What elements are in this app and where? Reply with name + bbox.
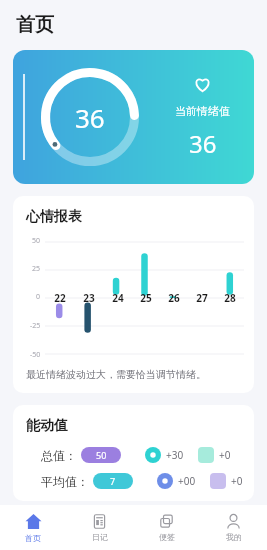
staticText: +0 bbox=[219, 448, 231, 462]
staticText: 首页 bbox=[16, 13, 54, 37]
staticText: 心情报表 bbox=[26, 208, 82, 226]
staticText: 36 bbox=[189, 127, 217, 160]
staticText: 50 bbox=[96, 449, 107, 461]
staticText: 首页 bbox=[25, 533, 41, 543]
button[interactable]: 总值： bbox=[41, 447, 254, 463]
staticText: 25 bbox=[32, 264, 41, 274]
staticText: 总值： bbox=[41, 448, 77, 463]
staticText: +00 bbox=[178, 474, 196, 488]
staticText: 当前情绪值 bbox=[175, 104, 230, 118]
staticText: 我的 bbox=[226, 532, 242, 542]
staticText: 0 bbox=[36, 292, 41, 302]
button[interactable]: 36 bbox=[13, 50, 254, 184]
staticText: 28 bbox=[224, 291, 236, 305]
button[interactable]: 日记 bbox=[66, 505, 133, 550]
staticText: 24 bbox=[112, 291, 124, 305]
staticText: 日记 bbox=[92, 532, 108, 542]
staticText: 25 bbox=[140, 291, 152, 305]
button[interactable]: 平均值： bbox=[41, 473, 254, 489]
staticText: 7 bbox=[110, 475, 116, 487]
staticText: 23 bbox=[83, 291, 95, 305]
staticText: 27 bbox=[196, 291, 208, 305]
staticText: 26 bbox=[168, 291, 180, 305]
staticText: -25 bbox=[30, 321, 41, 331]
staticText: 22 bbox=[54, 291, 66, 305]
other: Mood bbox=[193, 75, 212, 94]
staticText: 36 bbox=[75, 100, 105, 135]
staticText: +0 bbox=[231, 474, 243, 488]
staticText: +30 bbox=[166, 448, 184, 462]
button[interactable]: 便签 bbox=[133, 505, 200, 550]
staticText: 50 bbox=[32, 236, 41, 246]
button[interactable]: 我的 bbox=[200, 505, 267, 550]
staticText: 便签 bbox=[159, 532, 175, 542]
button[interactable]: 首页 bbox=[0, 505, 66, 550]
staticText: 能动值 bbox=[26, 417, 68, 435]
staticText: -50 bbox=[30, 350, 41, 360]
staticText: 最近情绪波动过大，需要恰当调节情绪。 bbox=[26, 368, 206, 381]
staticText: 平均值： bbox=[41, 474, 89, 489]
